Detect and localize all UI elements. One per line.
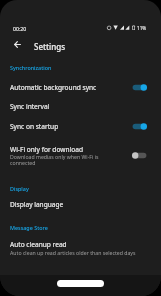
button[interactable] — [0, 117, 161, 137]
button[interactable] — [0, 195, 161, 215]
button[interactable] — [0, 237, 161, 261]
staticText: Settings — [34, 41, 66, 52]
staticText: Display — [10, 185, 29, 192]
staticText: Sync on startup — [10, 122, 59, 131]
staticText: Wi-Fi only for download — [10, 145, 83, 154]
staticText: Message Store — [10, 224, 48, 231]
staticText: Sync interval — [10, 102, 50, 111]
staticText: Synchronization — [10, 64, 52, 71]
button[interactable] — [0, 140, 161, 170]
button[interactable] — [0, 77, 161, 97]
button[interactable]: Switch on — [127, 117, 152, 135]
staticText: Display language — [10, 200, 64, 209]
staticText: Automatic background sync — [10, 83, 97, 92]
button[interactable]: Back — [10, 37, 25, 52]
staticText: 00:20 — [13, 25, 27, 32]
button[interactable]: Switch on — [127, 78, 152, 96]
staticText: 11% — [137, 25, 147, 31]
button[interactable]: Switch off — [127, 146, 152, 164]
staticText: Auto clean up read articles older than s… — [10, 249, 136, 256]
staticText: Download medias only when Wi-Fi is conne… — [10, 153, 122, 167]
button[interactable] — [0, 97, 161, 117]
staticText: Auto cleanup read — [10, 240, 67, 249]
